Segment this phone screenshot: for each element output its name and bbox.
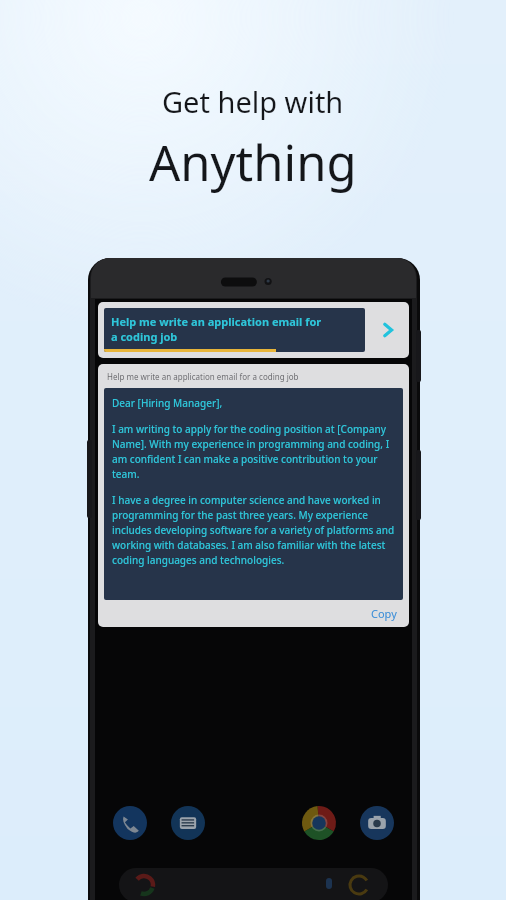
staticText: Get help with <box>162 82 344 121</box>
staticText: I am writing to apply for the coding pos… <box>112 422 395 481</box>
button[interactable]: Search <box>119 868 388 900</box>
button[interactable]: Submit <box>373 315 403 345</box>
button[interactable]: Camera <box>360 806 394 840</box>
staticText: Copy <box>371 606 397 621</box>
button[interactable]: Chrome <box>302 806 336 840</box>
staticText: Anything <box>149 129 357 196</box>
staticText: Help me write an application email for a… <box>107 371 299 382</box>
button[interactable]: Help me write an application email for a… <box>98 302 409 358</box>
button[interactable]: Help me write an application email for a… <box>98 364 409 627</box>
button[interactable]: Phone <box>113 806 147 840</box>
button[interactable]: Copy <box>359 602 409 625</box>
button[interactable]: Messages <box>171 806 205 840</box>
staticText: I have a degree in computer science and … <box>112 493 395 567</box>
staticText: Help me write an application email for a… <box>111 314 322 344</box>
staticText: Dear [Hiring Manager], <box>112 396 223 410</box>
